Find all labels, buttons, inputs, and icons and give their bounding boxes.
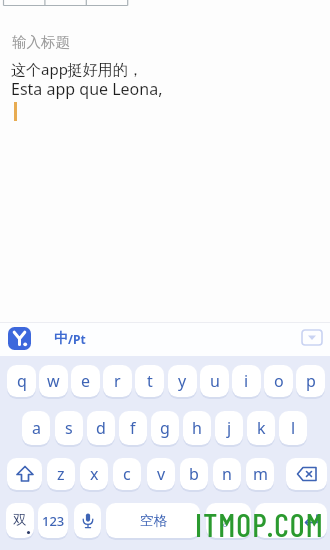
button[interactable] (301, 328, 324, 347)
button[interactable]: q (7, 365, 36, 397)
button[interactable] (7, 458, 42, 490)
staticText: 空格 (140, 512, 167, 529)
button[interactable]: e (71, 365, 100, 397)
staticText: u (210, 370, 220, 392)
staticText: y (178, 370, 187, 392)
button[interactable]: o (264, 365, 293, 397)
staticText: o (274, 370, 284, 392)
staticText: r (114, 370, 121, 392)
button[interactable]: g (151, 411, 179, 445)
staticText: w (47, 370, 60, 392)
button[interactable] (286, 458, 327, 490)
button[interactable]: c (113, 458, 141, 490)
button[interactable]: z (47, 458, 75, 490)
button[interactable]: 。 (206, 503, 251, 538)
staticText: k (257, 417, 266, 439)
button[interactable]: h (183, 411, 211, 445)
staticText: a (32, 417, 41, 439)
button[interactable]: w (39, 365, 68, 397)
button[interactable]: j (215, 411, 243, 445)
button[interactable] (8, 327, 31, 350)
button[interactable]: p (296, 365, 325, 397)
button[interactable]: s (55, 411, 83, 445)
staticText: l (291, 417, 296, 439)
staticText: Esta app que Leona, (11, 78, 163, 100)
staticText: g (160, 417, 170, 439)
button[interactable]: m (246, 458, 274, 490)
staticText: n (222, 463, 232, 485)
button[interactable] (255, 503, 327, 538)
staticText: p (306, 370, 316, 392)
staticText: s (65, 417, 73, 439)
staticText: /Pt (68, 331, 86, 347)
staticText: i (244, 370, 249, 392)
button[interactable]: f (119, 411, 147, 445)
staticText: v (157, 463, 166, 485)
staticText: 输入标题 (12, 33, 70, 51)
button[interactable]: d (87, 411, 115, 445)
staticText: e (81, 370, 91, 392)
button[interactable]: k (247, 411, 275, 445)
staticText: 双 (13, 512, 27, 529)
button[interactable]: y (168, 365, 197, 397)
staticText: 123 (42, 512, 65, 530)
button[interactable]: 双 (6, 503, 34, 538)
staticText: z (57, 463, 65, 485)
button[interactable]: 空格 (106, 503, 200, 538)
button[interactable]: 123 (38, 503, 68, 538)
button[interactable]: u (200, 365, 229, 397)
button[interactable]: b (180, 458, 208, 490)
button[interactable]: v (147, 458, 175, 490)
staticText: 。 (222, 512, 236, 529)
button[interactable]: t (135, 365, 164, 397)
staticText: h (192, 417, 202, 439)
staticText: d (96, 417, 106, 439)
staticText: 中 (54, 330, 68, 348)
staticText: b (189, 463, 199, 485)
staticText: 这个app挺好用的， (11, 59, 143, 79)
staticText: q (17, 370, 27, 392)
staticText: x (90, 463, 99, 485)
staticText: j (227, 417, 232, 439)
staticText: ITMOP.COM (195, 505, 324, 543)
button[interactable] (74, 503, 101, 538)
staticText: m (253, 463, 268, 485)
staticText: c (123, 463, 131, 485)
button[interactable]: l (279, 411, 307, 445)
button[interactable]: a (22, 411, 50, 445)
staticText: t (147, 370, 153, 392)
button[interactable]: r (103, 365, 132, 397)
button[interactable]: i (232, 365, 261, 397)
button[interactable]: n (213, 458, 241, 490)
staticText: f (130, 417, 136, 439)
button[interactable]: x (80, 458, 108, 490)
